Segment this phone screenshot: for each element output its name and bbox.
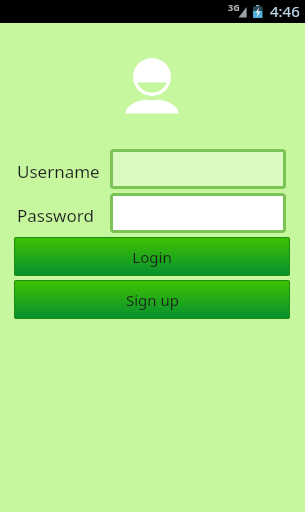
- staticText: 4:46: [270, 1, 300, 21]
- button[interactable]: Password input: [110, 193, 286, 233]
- staticText: 3G: [228, 1, 240, 13]
- staticText: Password: [17, 204, 94, 227]
- button[interactable]: Sign up: [14, 280, 290, 319]
- staticText: Sign up: [126, 290, 179, 310]
- button[interactable]: Username input: [110, 149, 286, 189]
- button[interactable]: Login: [14, 237, 290, 276]
- staticText: Login: [132, 247, 172, 267]
- staticText: Username: [17, 160, 100, 183]
